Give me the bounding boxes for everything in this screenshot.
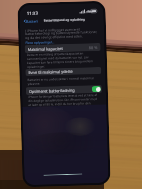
staticText: iPhone forlænger batteriets levetid ved … [28, 93, 100, 107]
button[interactable]: Batteri [23, 18, 40, 24]
other: Optimeret batteriladning slået til [92, 86, 101, 92]
staticText: I iPhone har vi indbygget avanceret batt… [25, 26, 99, 40]
staticText: Evne til maksimal ydelse [28, 69, 73, 75]
button[interactable]: Maksimal kapacitet [24, 43, 101, 53]
button[interactable]: Optimeret batteriladning [26, 85, 102, 95]
staticText: 88 % [89, 45, 98, 50]
staticText: Dette er en måling af batterikapaciteten… [27, 51, 99, 69]
staticText: Batteri [26, 19, 39, 23]
staticText: Batteriet er nu understøtter i normal ma… [27, 76, 100, 86]
button[interactable]: Evne til maksimal ydelse [25, 67, 101, 76]
staticText: 11:33 [26, 10, 39, 15]
staticText: Optimeret batteriladning [29, 88, 75, 94]
button[interactable]: Flere oplysninger... [25, 39, 54, 44]
staticText: Maksimal kapacitet [28, 46, 64, 52]
staticText: Batteritilstand og -opladning [44, 17, 86, 22]
